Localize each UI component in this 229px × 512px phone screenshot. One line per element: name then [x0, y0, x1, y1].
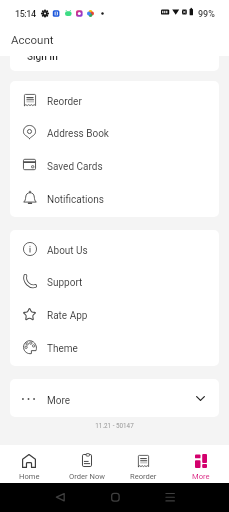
button[interactable]: Saved Cards: [10, 148, 219, 181]
staticText: Support: [47, 277, 83, 289]
staticText: Reorder: [47, 96, 82, 108]
button[interactable]: Sign In: [10, 56, 219, 71]
button[interactable]: Reorder: [115, 445, 172, 483]
staticText: Home: [19, 472, 40, 481]
staticText: Order Now: [69, 472, 105, 481]
staticText: About Us: [47, 245, 88, 257]
button[interactable]: Support: [10, 265, 219, 297]
button[interactable]: More: [10, 379, 219, 417]
button[interactable]: More: [172, 445, 229, 483]
button[interactable]: Rate App: [10, 297, 219, 330]
staticText: 11.21 - 50147: [0, 422, 229, 429]
button[interactable]: Reorder: [10, 84, 219, 116]
staticText: Notifications: [47, 194, 104, 206]
button[interactable]: Theme: [10, 330, 219, 363]
staticText: Rate App: [47, 310, 88, 322]
button[interactable]: Order Now: [58, 445, 115, 483]
staticText: Reorder: [130, 472, 157, 481]
button[interactable]: Address Book: [10, 116, 219, 148]
staticText: More: [192, 472, 210, 481]
staticText: More: [47, 395, 71, 407]
button[interactable]: Notifications: [10, 181, 219, 214]
staticText: Saved Cards: [47, 161, 103, 173]
button[interactable]: About Us: [10, 233, 219, 265]
staticText: Sign In: [27, 56, 58, 63]
staticText: Theme: [47, 343, 78, 355]
button[interactable]: Home: [0, 445, 58, 483]
staticText: Account: [11, 33, 54, 46]
staticText: Address Book: [47, 128, 109, 140]
staticText: 15:14: [15, 9, 36, 20]
staticText: 99%: [198, 9, 215, 20]
